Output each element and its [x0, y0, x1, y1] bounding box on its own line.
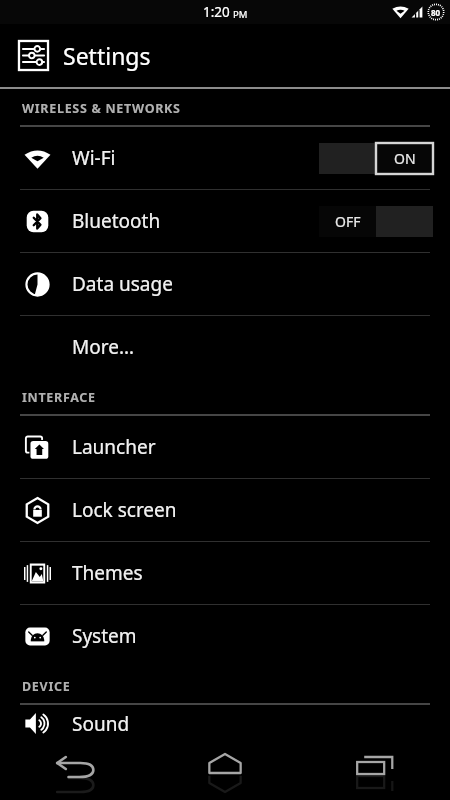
staticText: WIRELESS & NETWORKS: [22, 100, 181, 117]
button[interactable]: Launcher: [0, 416, 450, 478]
button[interactable]: Back: [0, 742, 150, 800]
button[interactable]: Turn off: [319, 143, 433, 174]
staticText: 1:20: [203, 3, 230, 21]
button[interactable]: More…: [0, 316, 450, 378]
button[interactable]: Sound: [0, 705, 450, 742]
staticText: Lock screen: [72, 497, 177, 523]
staticText: System: [72, 623, 137, 649]
staticText: Themes: [72, 560, 143, 586]
button[interactable]: Wi-Fi: [0, 127, 450, 189]
button[interactable]: Recent apps: [300, 742, 450, 800]
staticText: OFF: [335, 212, 361, 231]
staticText: Data usage: [72, 271, 173, 297]
staticText: INTERFACE: [22, 389, 96, 406]
staticText: ON: [394, 149, 416, 168]
staticText: Sound: [72, 711, 130, 737]
staticText: Launcher: [72, 434, 156, 460]
staticText: PM: [233, 8, 248, 21]
staticText: 80: [431, 7, 441, 18]
staticText: More…: [72, 334, 134, 360]
staticText: Bluetooth: [72, 208, 161, 234]
staticText: Settings: [63, 40, 151, 71]
button[interactable]: Settings: [0, 24, 450, 87]
button[interactable]: Themes: [0, 542, 450, 604]
button[interactable]: System: [0, 605, 450, 667]
button[interactable]: Turn on: [319, 206, 433, 237]
staticText: DEVICE: [22, 678, 71, 695]
button[interactable]: Bluetooth: [0, 190, 450, 252]
button[interactable]: Data usage: [0, 253, 450, 315]
staticText: Wi-Fi: [72, 145, 116, 171]
button[interactable]: Lock screen: [0, 479, 450, 541]
button[interactable]: Home: [150, 742, 300, 800]
